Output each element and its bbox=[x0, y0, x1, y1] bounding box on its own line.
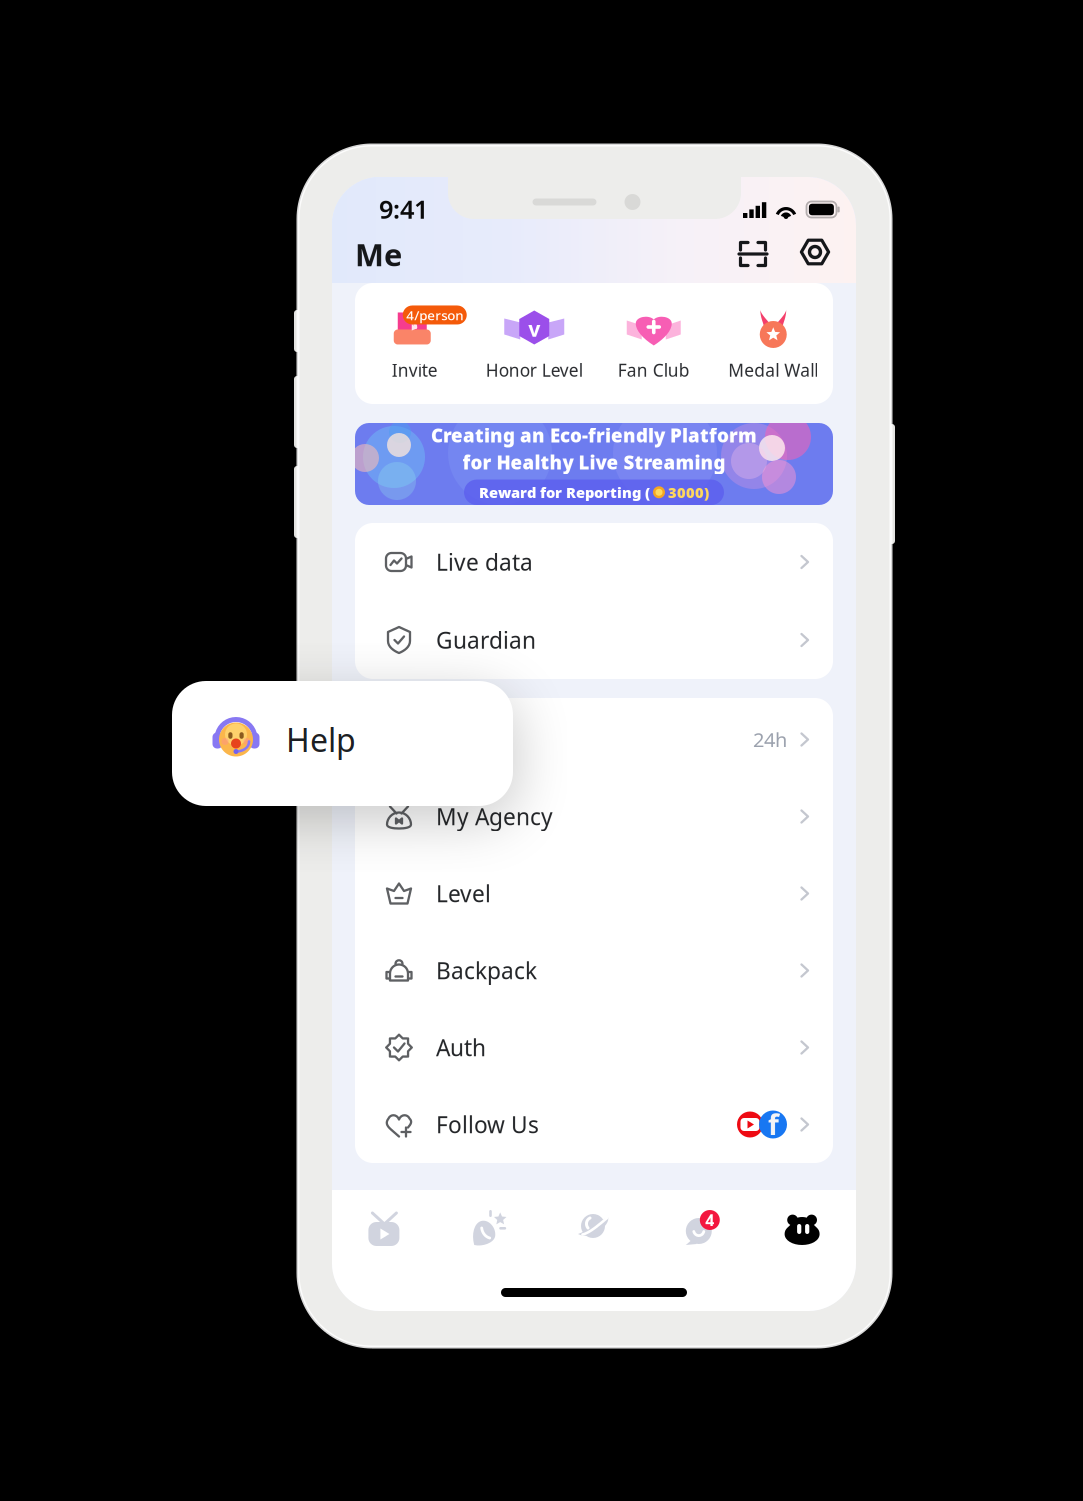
button[interactable]: Help bbox=[172, 681, 513, 806]
staticText: Creating an Eco-friendly Platform bbox=[431, 423, 757, 448]
button[interactable]: Live data bbox=[355, 523, 833, 601]
staticText: Guardian bbox=[436, 625, 536, 655]
button[interactable]: Me bbox=[751, 1190, 856, 1268]
staticText: for Healthy Live Streaming bbox=[462, 450, 725, 475]
staticText: 3000) bbox=[668, 483, 709, 502]
button[interactable]: Settings bbox=[793, 230, 837, 274]
staticText: Medal Wall bbox=[728, 358, 818, 381]
staticText: Reward for Reporting ( bbox=[479, 483, 650, 502]
staticText: My Agency bbox=[436, 801, 553, 831]
staticText: Live data bbox=[436, 547, 533, 577]
button[interactable]: Creating an Eco-friendly Platform bbox=[355, 423, 833, 505]
button[interactable]: 4/person bbox=[355, 282, 474, 405]
staticText: 4/person bbox=[406, 306, 463, 324]
button[interactable]: Planet bbox=[542, 1190, 646, 1268]
staticText: Level bbox=[436, 878, 491, 908]
button[interactable]: Guardian bbox=[355, 601, 833, 679]
staticText: Backpack bbox=[436, 955, 537, 985]
button[interactable]: Level bbox=[355, 855, 833, 932]
staticText: Honor Level bbox=[486, 358, 583, 381]
button[interactable]: v bbox=[474, 282, 594, 405]
button[interactable]: My Agency bbox=[355, 778, 833, 855]
button[interactable]: Follow Us bbox=[355, 1086, 833, 1163]
staticText: Help bbox=[286, 718, 356, 761]
staticText: 9:41 bbox=[379, 192, 428, 226]
staticText: 24h bbox=[753, 726, 787, 753]
button[interactable]: Messages bbox=[646, 1190, 751, 1268]
staticText: 4 bbox=[705, 1209, 714, 1231]
button[interactable]: Fan Club bbox=[594, 282, 713, 405]
button[interactable]: Live bbox=[332, 1190, 437, 1268]
button[interactable]: Backpack bbox=[355, 932, 833, 1009]
staticText: v bbox=[528, 314, 540, 343]
staticText: Fan Club bbox=[618, 358, 690, 381]
button[interactable]: Scan bbox=[731, 232, 775, 276]
staticText: Follow Us bbox=[436, 1109, 539, 1139]
staticText: Me bbox=[355, 234, 402, 275]
staticText: f bbox=[768, 1106, 779, 1143]
button[interactable]: Discover bbox=[437, 1190, 542, 1268]
button[interactable]: Auth bbox=[355, 1009, 833, 1086]
button[interactable] bbox=[355, 701, 833, 778]
button[interactable]: Medal Wall bbox=[713, 282, 833, 405]
staticText: Auth bbox=[436, 1032, 486, 1062]
staticText: Invite bbox=[392, 358, 438, 381]
